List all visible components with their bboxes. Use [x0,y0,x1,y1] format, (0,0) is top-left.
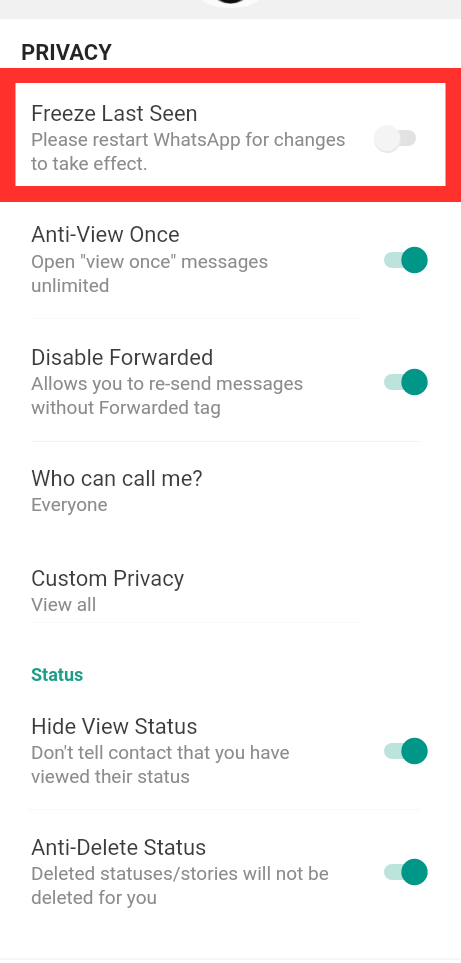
button[interactable]: Anti-Delete Status [0,835,461,909]
staticText: Anti-View Once [31,222,180,248]
staticText: View all [31,593,97,615]
button[interactable]: Disable Forwarded [0,345,461,419]
button[interactable]: Custom Privacy [0,566,461,615]
staticText: Freeze Last Seen [31,101,198,127]
button[interactable]: Anti-View Once [0,222,461,297]
staticText: Allows you to re-send messages without F… [31,372,304,419]
button[interactable]: Toggle, on [374,857,427,887]
button[interactable]: Toggle, on [374,245,427,275]
staticText: Don't tell contact that you have viewed … [31,741,290,788]
staticText: Open "view once" messages unlimited [31,250,269,297]
button[interactable]: Freeze Last Seen [0,101,461,175]
staticText: Anti-Delete Status [31,835,207,861]
staticText: Please restart WhatsApp for changes to t… [31,128,346,175]
button[interactable]: Hide View Status [0,714,461,788]
staticText: Who can call me? [31,466,203,492]
staticText: PRIVACY [21,40,112,66]
button[interactable]: Toggle, off [374,123,427,153]
staticText: Status [31,664,84,685]
staticText: Disable Forwarded [31,345,214,371]
staticText: Hide View Status [31,714,198,740]
staticText: Everyone [31,493,108,515]
staticText: Deleted statuses/stories will not be del… [31,862,329,909]
button[interactable]: Toggle, on [374,367,427,397]
staticText: Custom Privacy [31,566,185,592]
button[interactable]: Toggle, on [374,736,427,766]
button[interactable]: Who can call me? [0,466,461,515]
